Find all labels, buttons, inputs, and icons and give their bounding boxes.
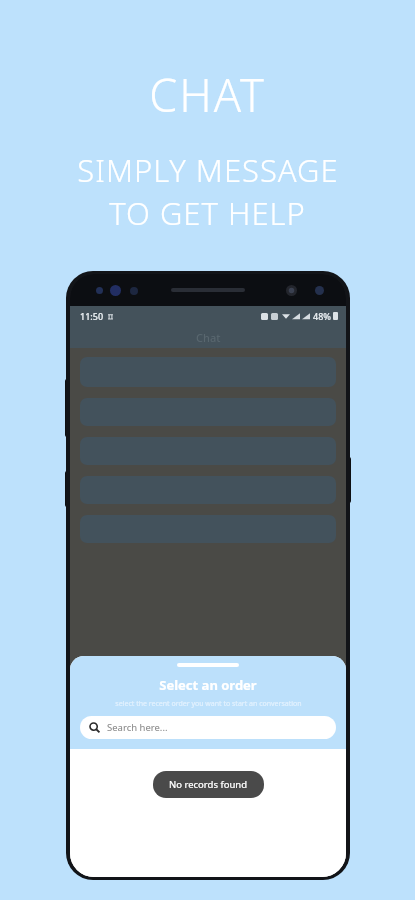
staticText: 11:50	[80, 310, 104, 322]
staticText: SIMPLY MESSAGE	[77, 149, 339, 191]
staticText: select the recent order you want to star…	[115, 699, 302, 709]
staticText: 48%	[313, 310, 331, 322]
button[interactable]: No records found	[153, 771, 264, 798]
staticText: TO GET HELP	[109, 192, 306, 234]
staticText: Search here...	[107, 721, 168, 734]
button[interactable]: Search here...	[80, 716, 336, 739]
staticText: CHAT	[149, 64, 266, 125]
staticText: Select an order	[159, 676, 257, 694]
staticText: No records found	[169, 778, 248, 791]
staticText: Chat	[196, 330, 221, 345]
